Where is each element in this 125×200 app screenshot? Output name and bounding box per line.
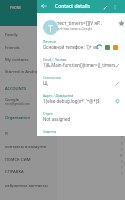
staticText: ПОИСК СИМ: [5, 157, 31, 163]
staticText: Отдел: [43, 111, 53, 115]
staticText: контакты в аккаунте: [5, 144, 47, 150]
staticText: учётная запись Google: [57, 27, 93, 31]
staticText: Щ: [43, 80, 48, 86]
staticText: СПРАВКА: [5, 169, 24, 175]
staticText: A: [121, 22, 123, 26]
staticText: T: [121, 136, 123, 140]
button[interactable]: СПРАВКА: [0, 165, 57, 178]
staticText: Заметки: [43, 129, 57, 133]
button[interactable]: Email / Личная: [37, 57, 125, 75]
staticText: 1{else debug.log(x+'.'+@*)$: [43, 98, 100, 104]
button[interactable]: Заметки: [37, 129, 125, 147]
button[interactable]: PHONE: [0, 0, 57, 26]
staticText: Y: [121, 166, 123, 170]
staticText: Email / Личная: [43, 57, 67, 61]
staticText: V: [121, 148, 123, 152]
button[interactable]: Edit field: [113, 61, 122, 70]
staticText: ACCOUNTS: [5, 86, 27, 91]
button[interactable]: избранные контакты: [0, 179, 57, 192]
button[interactable]: ПОИСК СИМ: [0, 153, 57, 166]
staticText: Family: [5, 32, 18, 38]
button[interactable]: Connection: [37, 75, 125, 93]
button[interactable]: Edit contact: [99, 1, 111, 13]
button[interactable]: контакты в аккаунте: [0, 140, 57, 153]
button[interactable]: Отдел: [37, 111, 125, 129]
button[interactable]: Send message: [111, 43, 119, 51]
button[interactable]: Адрес / Домашний: [37, 93, 125, 111]
button[interactable]: Video call: [103, 43, 111, 51]
button[interactable]: More options: [109, 1, 121, 13]
button[interactable]: My contacts: [0, 53, 57, 66]
staticText: Google: [5, 97, 20, 103]
button[interactable]: Я: [0, 127, 57, 140]
button[interactable]: Call: [95, 43, 103, 51]
staticText: Not assigned: [43, 116, 71, 122]
staticText: Contact details: [55, 3, 90, 10]
button[interactable]: Suggestion: [113, 97, 122, 106]
staticText: тест_timers=[]JV яP..: [57, 20, 102, 27]
button[interactable]: T: [37, 13, 125, 38]
button[interactable]: Starred in Android: [0, 65, 57, 78]
staticText: Organization: [5, 115, 30, 120]
staticText: X: [121, 160, 123, 164]
button[interactable]: Google: [0, 95, 57, 109]
staticText: Z: [121, 172, 123, 176]
staticText: тест@gmail.com: [5, 102, 30, 106]
button[interactable]: Add to favorites: [116, 18, 125, 28]
button[interactable]: Family: [0, 28, 57, 41]
button[interactable]: Navigate up: [38, 0, 50, 12]
staticText: U: [121, 142, 123, 146]
staticText: 1)&,Main-function()(timer=()_timers..: [43, 62, 118, 68]
button[interactable]: Organization: [0, 111, 57, 123]
staticText: избранные контакты: [5, 183, 48, 189]
staticText: Starred in Android: [5, 69, 41, 75]
staticText: My contacts: [5, 57, 29, 63]
staticText: Личный: [43, 39, 56, 43]
staticText: W: [120, 154, 123, 158]
staticText: Я: [5, 131, 8, 137]
staticText: PHONE: [10, 6, 22, 10]
staticText: Основной телефон: 1)+ м..: [43, 44, 99, 50]
staticText: Адрес / Домашний: [43, 93, 74, 97]
staticText: T: [48, 22, 54, 34]
button[interactable]: ACCOUNTS: [0, 82, 57, 94]
button[interactable]: Friends: [0, 41, 57, 54]
button[interactable]: Edit field: [113, 79, 122, 88]
staticText: Friends: [5, 45, 20, 51]
button[interactable]: Личный: [37, 39, 125, 57]
staticText: Connection: [43, 75, 61, 79]
